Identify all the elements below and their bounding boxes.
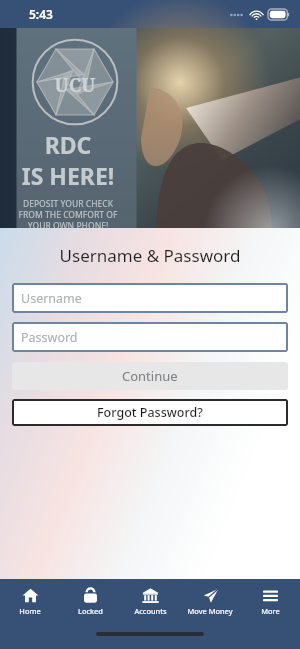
staticText: Home <box>19 606 41 616</box>
staticText: Forgot Password? <box>97 404 203 421</box>
staticText: Move Money <box>187 606 233 616</box>
staticText: More <box>261 606 280 616</box>
button[interactable]: Accounts <box>120 579 180 623</box>
staticText: IS HERE! <box>0 160 136 191</box>
button[interactable]: Home <box>0 579 60 623</box>
staticText: RDC <box>0 129 136 160</box>
button[interactable]: Continue <box>12 362 288 390</box>
button[interactable]: More <box>240 579 300 623</box>
staticText: Accounts <box>134 606 167 616</box>
staticText: Username & Password <box>0 244 300 267</box>
staticText: Username <box>21 290 82 307</box>
button[interactable]: Username <box>12 283 288 313</box>
staticText: Continue <box>122 367 178 385</box>
button[interactable]: Password <box>12 322 288 352</box>
staticText: Locked <box>78 606 103 616</box>
staticText: GET STARTED <box>42 243 94 254</box>
button[interactable]: GET STARTED <box>32 239 104 257</box>
staticText: Password <box>21 329 78 346</box>
staticText: UCU <box>52 72 98 98</box>
button[interactable]: Locked <box>60 579 120 623</box>
button[interactable]: Move Money <box>180 579 240 623</box>
staticText: DEPOSIT YOUR CHECK FROM THE COMFORT OF Y… <box>0 198 136 231</box>
staticText: 5:43 <box>29 6 53 22</box>
button[interactable]: Forgot Password? <box>12 399 288 426</box>
